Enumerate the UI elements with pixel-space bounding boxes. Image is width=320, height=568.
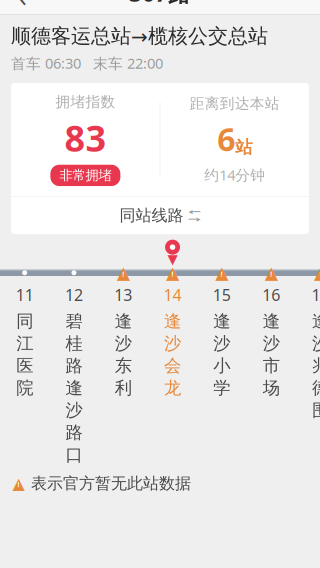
staticText: 医 (16, 355, 33, 376)
staticText: 学 (213, 377, 230, 399)
staticText: ▲ (215, 263, 228, 283)
staticText: ! (270, 270, 272, 279)
staticText: 逢 (65, 377, 82, 399)
staticText: 沙 (263, 333, 280, 354)
staticText: ◀ (188, 209, 192, 215)
staticText: 路 (65, 422, 82, 443)
staticText: ! (122, 270, 124, 279)
staticText: 约14分钟 (204, 165, 265, 184)
staticText: 首车 06:30 (11, 53, 81, 73)
staticText: ▲ (12, 474, 24, 492)
staticText: 兆 (312, 355, 320, 376)
staticText: 14 (163, 284, 181, 305)
staticText: ▼ (167, 252, 177, 267)
staticText: 德 (312, 377, 320, 399)
staticText: 利 (115, 377, 132, 399)
staticText: 会 (164, 355, 181, 376)
staticText: ! (17, 480, 19, 489)
staticText: 非常拥堵 (59, 167, 111, 184)
staticText: 逢 (115, 310, 132, 332)
staticText: 站 (235, 137, 252, 158)
staticText: ! (319, 270, 320, 279)
staticText: 距离到达本站 (190, 94, 280, 112)
staticText: ▲ (166, 263, 179, 283)
staticText: 同站线路 (119, 206, 183, 225)
staticText: 围 (312, 400, 320, 421)
button[interactable]: 同站线路 (11, 197, 309, 234)
staticText: 碧 (65, 310, 82, 332)
staticText: ▲ (314, 263, 320, 283)
staticText: 6 (217, 117, 235, 160)
staticText: 13 (114, 284, 132, 305)
staticText: 场 (263, 377, 280, 399)
staticText: 表示官方暂无此站数据 (31, 473, 191, 493)
staticText: 沙 (213, 333, 230, 354)
staticText: 同 (16, 310, 33, 332)
staticText: 路 (65, 355, 82, 376)
button[interactable]: Back (0, 0, 44, 15)
staticText: 龙 (164, 377, 181, 399)
staticText: 83 (64, 114, 106, 162)
staticText: 末车 22:00 (93, 53, 163, 73)
staticText: 逢 (263, 310, 280, 332)
staticText: 逢 (312, 310, 320, 332)
staticText: 东 (115, 355, 132, 376)
staticText: 院 (16, 377, 33, 399)
staticText: 沙 (312, 333, 320, 354)
staticText: 15 (213, 284, 231, 305)
staticText: 12 (65, 284, 83, 305)
staticText: 16 (262, 284, 280, 305)
staticText: 顺德客运总站→榄核公交总站 (11, 24, 268, 48)
staticText: 江 (16, 333, 33, 354)
staticText: 17 (311, 284, 320, 305)
staticText: ‹ (16, 0, 27, 19)
staticText: 逢 (164, 310, 181, 332)
staticText: 沙 (164, 333, 181, 354)
staticText: 桂 (65, 333, 82, 354)
staticText: ▲ (265, 263, 278, 283)
staticText: 市 (263, 355, 280, 376)
staticText: 口 (65, 444, 82, 465)
staticText: 11 (16, 284, 34, 305)
staticText: 拥堵指数 (55, 93, 115, 111)
staticText: ! (171, 270, 173, 279)
staticText: ! (221, 270, 223, 279)
staticText: 沙 (115, 333, 132, 354)
staticText: 307路 (129, 0, 191, 8)
staticText: ▲ (117, 263, 130, 283)
staticText: 逢 (213, 310, 230, 332)
staticText: ▶ (196, 216, 200, 222)
staticText: 沙 (65, 400, 82, 421)
staticText: 小 (213, 355, 230, 376)
